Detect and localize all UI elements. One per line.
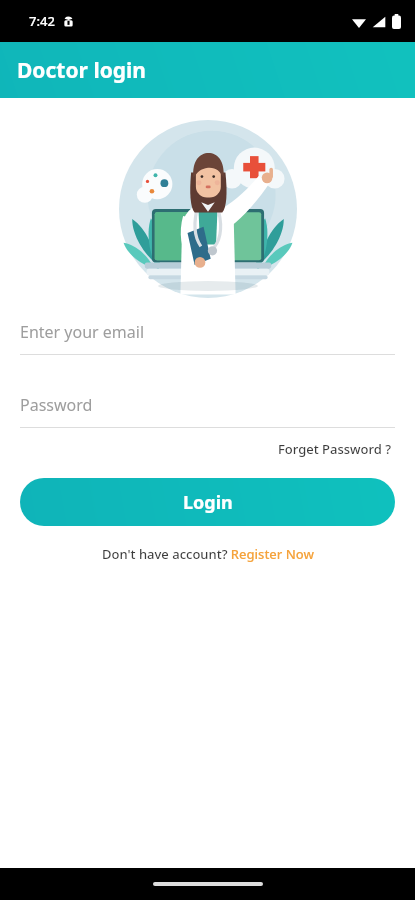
staticText: 7:42 — [29, 12, 55, 30]
staticText: Password — [20, 394, 93, 416]
staticText: Enter your email — [20, 321, 145, 343]
staticText: Login — [183, 490, 233, 515]
button[interactable]: Password — [20, 394, 395, 428]
staticText: Doctor login — [17, 56, 147, 85]
staticText: Don't have account? Register Now — [102, 545, 314, 563]
staticText: Forget Password ? — [278, 440, 391, 458]
button[interactable]: Login — [20, 478, 395, 526]
button[interactable]: Enter your email — [20, 321, 395, 355]
button[interactable]: Forget Password ? — [274, 436, 395, 462]
button[interactable]: Don't have account? Register Now — [96, 543, 320, 565]
